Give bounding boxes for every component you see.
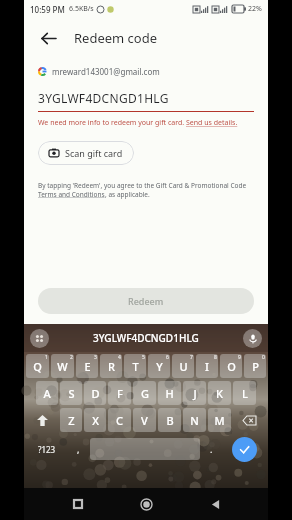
button[interactable]: Comma bbox=[69, 435, 88, 463]
staticText: , as applicable. bbox=[105, 190, 150, 199]
staticText: Z bbox=[68, 413, 75, 428]
staticText: P bbox=[252, 359, 259, 374]
button[interactable]: Terms and Conditions bbox=[38, 190, 105, 199]
button[interactable]: Y bbox=[148, 354, 170, 378]
staticText: G bbox=[141, 386, 149, 401]
button[interactable]: W bbox=[51, 354, 74, 378]
staticText: D bbox=[91, 386, 100, 401]
staticText: . bbox=[210, 443, 213, 455]
button[interactable]: L bbox=[233, 381, 256, 405]
button[interactable]: G bbox=[133, 381, 156, 405]
staticText: 4 bbox=[118, 354, 121, 361]
staticText: 0 bbox=[262, 354, 265, 361]
button[interactable]: M bbox=[208, 408, 231, 432]
button[interactable]: D bbox=[84, 381, 106, 405]
staticText: 3YGLWF4DCNGD1HLG bbox=[93, 331, 199, 345]
button[interactable]: Space bbox=[90, 438, 200, 460]
staticText: V bbox=[141, 413, 148, 428]
button[interactable]: U bbox=[172, 354, 194, 378]
staticText: 6.5KB/s bbox=[69, 4, 94, 14]
button[interactable]: Scan gift card bbox=[38, 141, 134, 165]
button[interactable]: P bbox=[244, 354, 266, 378]
button[interactable]: J bbox=[183, 381, 206, 405]
staticText: 9 bbox=[238, 354, 241, 361]
button[interactable]: Keyboard options bbox=[30, 329, 49, 348]
button[interactable]: Send us details. bbox=[186, 118, 238, 128]
button[interactable]: Shift bbox=[26, 408, 58, 432]
staticText: J bbox=[193, 386, 197, 401]
staticText: 3 bbox=[94, 354, 97, 361]
staticText: M bbox=[214, 413, 225, 428]
staticText: O bbox=[227, 359, 236, 374]
staticText: Y bbox=[156, 359, 163, 374]
staticText: U bbox=[179, 359, 188, 374]
staticText: F bbox=[117, 386, 123, 401]
button[interactable]: N bbox=[183, 408, 206, 432]
staticText: W bbox=[57, 359, 68, 374]
staticText: Scan gift card bbox=[65, 147, 123, 159]
button[interactable]: Q bbox=[26, 354, 49, 378]
button[interactable]: Enter bbox=[232, 437, 257, 462]
staticText: 10:59 PM bbox=[30, 4, 65, 15]
staticText: C bbox=[116, 413, 123, 428]
button[interactable]: Z bbox=[60, 408, 82, 432]
staticText: 6 bbox=[166, 354, 169, 361]
button[interactable]: I bbox=[196, 354, 218, 378]
staticText: Redeem code bbox=[74, 29, 158, 47]
button[interactable]: Voice input bbox=[243, 329, 262, 348]
button[interactable]: Back bbox=[200, 489, 230, 519]
staticText: 2 bbox=[70, 354, 73, 361]
staticText: By tapping 'Redeem', you agree to the Gi… bbox=[38, 181, 247, 190]
button[interactable]: Redeem bbox=[38, 288, 254, 314]
button[interactable]: O bbox=[220, 354, 242, 378]
staticText: 5 bbox=[142, 354, 145, 361]
button[interactable]: R bbox=[100, 354, 122, 378]
button[interactable]: T bbox=[124, 354, 146, 378]
staticText: 22% bbox=[248, 4, 262, 14]
button[interactable]: C bbox=[108, 408, 131, 432]
button[interactable]: K bbox=[208, 381, 231, 405]
button[interactable]: V bbox=[133, 408, 156, 432]
staticText: A bbox=[43, 386, 51, 401]
button[interactable]: B bbox=[158, 408, 181, 432]
staticText: 3YGLWF4DCNGD1HLG bbox=[38, 90, 169, 106]
staticText: , bbox=[77, 443, 80, 455]
staticText: X bbox=[92, 413, 99, 428]
staticText: I bbox=[205, 359, 209, 374]
button[interactable]: Backspace bbox=[233, 408, 266, 432]
staticText: N bbox=[190, 413, 199, 428]
staticText: H bbox=[165, 386, 174, 401]
staticText: B bbox=[166, 413, 174, 428]
button[interactable]: X bbox=[84, 408, 106, 432]
button[interactable]: Recents bbox=[63, 489, 93, 519]
staticText: 7 bbox=[190, 354, 193, 361]
staticText: E bbox=[84, 359, 91, 374]
staticText: 1 bbox=[45, 354, 48, 361]
button[interactable]: F bbox=[108, 381, 131, 405]
button[interactable]: H bbox=[158, 381, 181, 405]
staticText: 8 bbox=[214, 354, 217, 361]
button[interactable]: A bbox=[36, 381, 58, 405]
staticText: mreward143001@gmail.com bbox=[52, 66, 160, 77]
button[interactable]: Back bbox=[32, 22, 64, 54]
staticText: L bbox=[242, 386, 248, 401]
staticText: R bbox=[108, 359, 115, 374]
staticText: Q bbox=[33, 359, 42, 374]
button[interactable]: ?123 bbox=[25, 435, 69, 463]
button[interactable]: E bbox=[76, 354, 98, 378]
staticText: S bbox=[68, 386, 75, 401]
button[interactable]: Home bbox=[131, 489, 161, 519]
button[interactable]: Period bbox=[202, 435, 221, 463]
staticText: K bbox=[216, 386, 223, 401]
button[interactable]: S bbox=[60, 381, 82, 405]
staticText: We need more info to redeem your gift ca… bbox=[38, 118, 186, 128]
staticText: T bbox=[132, 359, 139, 374]
staticText: Redeem bbox=[128, 295, 164, 307]
staticText: ?123 bbox=[38, 444, 56, 455]
